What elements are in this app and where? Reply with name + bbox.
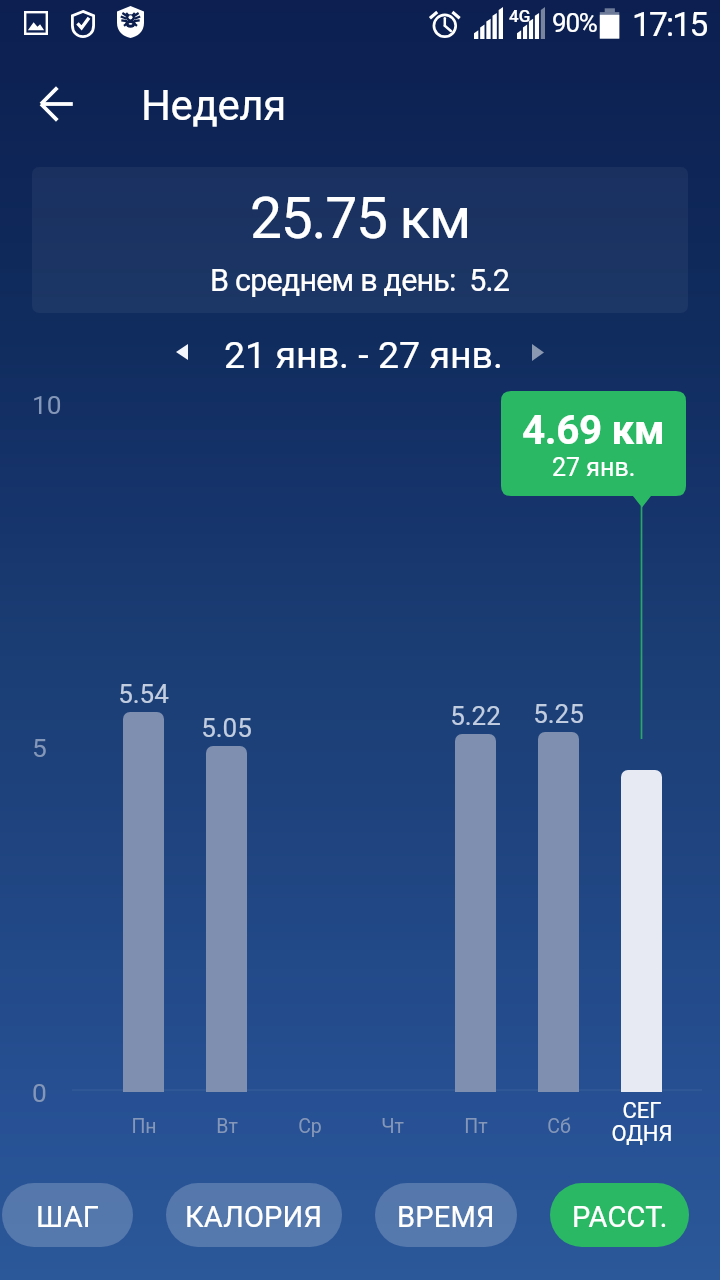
staticText: КАЛОРИЯ [185,1200,323,1234]
button[interactable]: 4.69 км [501,391,686,509]
button[interactable] [538,732,579,1092]
staticText: Сб [547,1115,571,1138]
button[interactable]: ШАГ [2,1183,133,1247]
staticText: 21 янв. - 27 янв. [224,333,503,377]
staticText: 5.05 [201,713,252,743]
button[interactable] [621,770,662,1092]
staticText: В среднем в день: 5.2 [210,263,510,299]
staticText: 5 [32,733,47,764]
button[interactable] [123,712,164,1092]
staticText: Пт [464,1115,488,1138]
staticText: ШАГ [36,1200,100,1234]
staticText: Ср [298,1115,322,1138]
button[interactable]: РАССТ. [550,1183,689,1247]
staticText: Неделя [141,81,286,130]
button[interactable]: 25.75 км [32,167,688,313]
staticText: 5.25 [533,699,584,729]
button[interactable]: КАЛОРИЯ [166,1183,342,1247]
staticText: 4G [509,6,531,26]
staticText: 10 [32,390,62,421]
staticText: 90% [552,8,597,38]
button[interactable]: Previous week [155,325,209,379]
button[interactable] [455,734,496,1092]
button[interactable] [206,746,247,1092]
staticText: 5.54 [118,679,169,709]
staticText: 0 [32,1078,47,1109]
button[interactable]: ВРЕМЯ [375,1183,517,1247]
staticText: 5.22 [450,701,501,731]
staticText: Вт [216,1115,238,1138]
staticText: 4.69 км [522,406,665,453]
staticText: СЕГ ОДНЯ [611,1098,673,1147]
button[interactable]: Next week [511,325,565,379]
staticText: 17:15 [632,5,707,44]
staticText: Чт [381,1115,404,1138]
staticText: РАССТ. [572,1200,668,1234]
staticText: Пн [131,1115,157,1138]
staticText: ВРЕМЯ [397,1200,495,1234]
staticText: 25.75 км [250,185,470,252]
button[interactable]: Back [28,76,84,132]
staticText: 27 янв. [552,453,636,482]
